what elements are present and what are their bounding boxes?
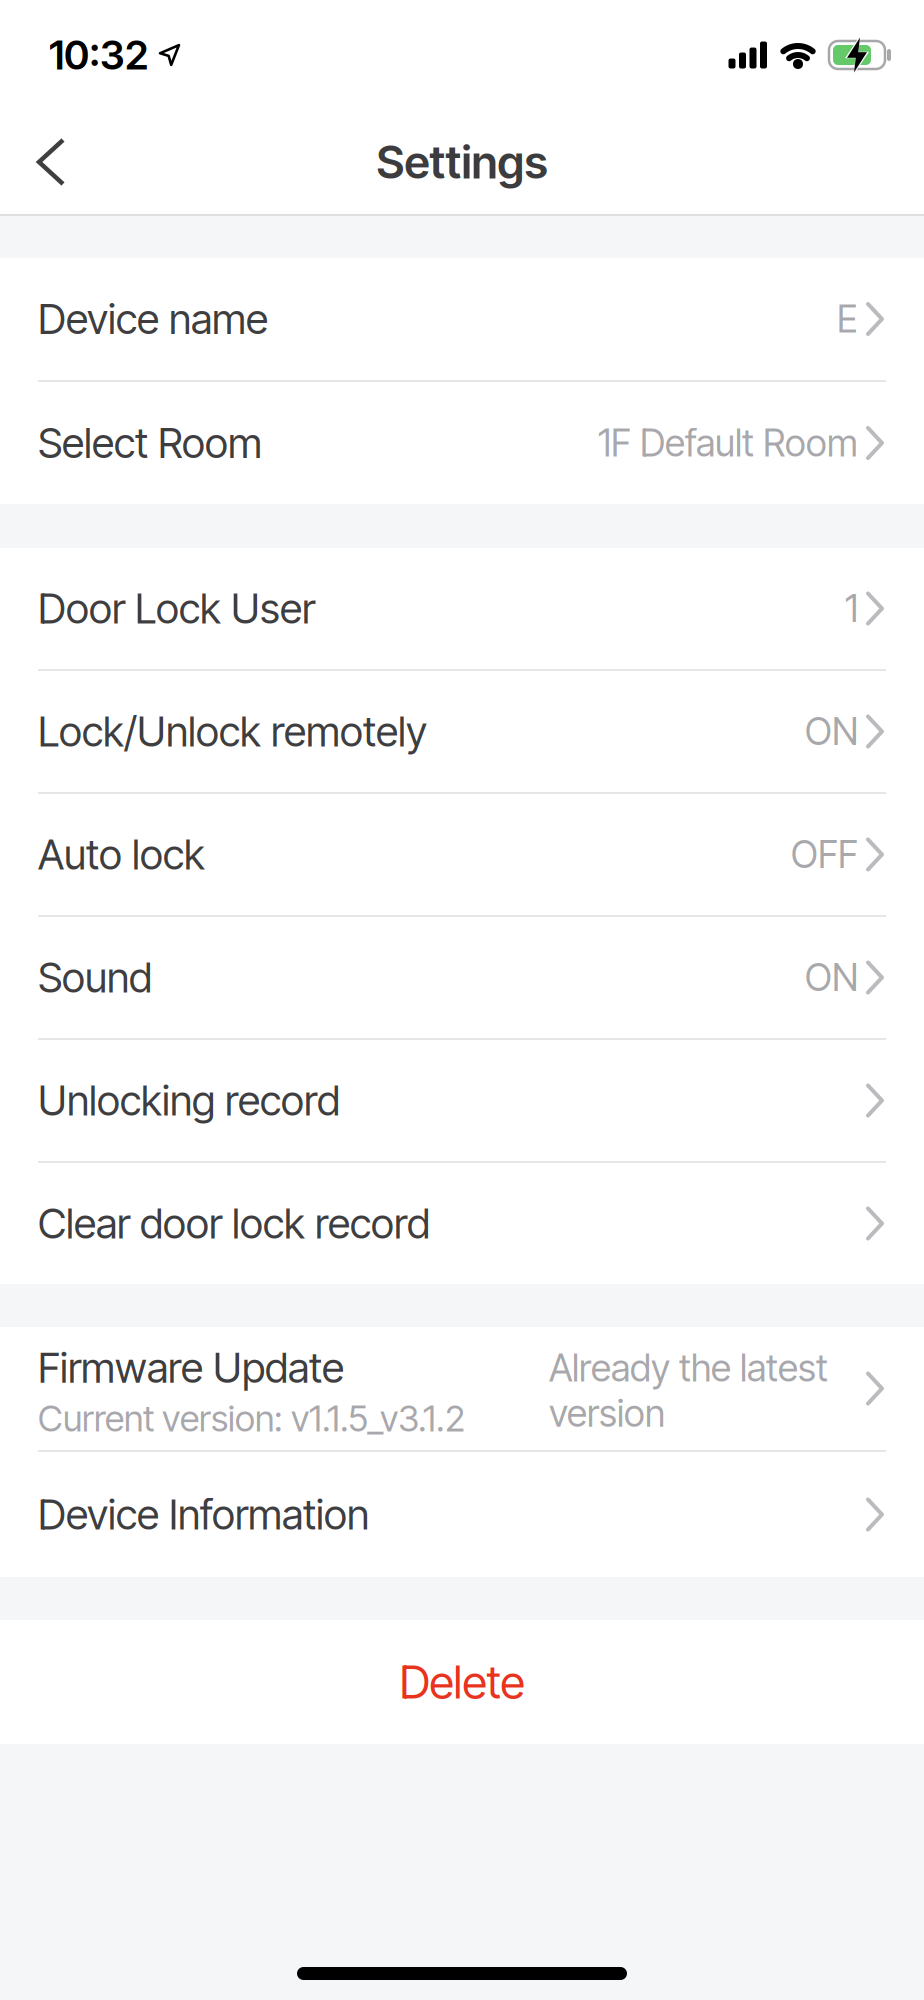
- button[interactable]: Firmware Update: [0, 1327, 924, 1450]
- staticText: Unlocking record: [38, 1075, 340, 1125]
- staticText: E: [837, 296, 858, 342]
- staticText: Current version: v1.1.5_v3.1.2: [38, 1397, 465, 1440]
- button[interactable]: Clear door lock record: [0, 1163, 924, 1284]
- staticText: ON: [805, 709, 858, 754]
- button[interactable]: Lock/Unlock remotely: [0, 671, 924, 792]
- button[interactable]: Device name: [0, 258, 924, 380]
- staticText: Settings: [376, 135, 547, 189]
- button[interactable]: Unlocking record: [0, 1040, 924, 1161]
- button[interactable]: Door Lock User: [0, 548, 924, 669]
- button[interactable]: Select Room: [0, 382, 924, 504]
- staticText: Device Information: [38, 1489, 369, 1539]
- staticText: version: [549, 1390, 665, 1436]
- staticText: ON: [805, 955, 858, 1000]
- staticText: Select Room: [38, 418, 262, 468]
- button[interactable]: Delete: [0, 1620, 924, 1744]
- staticText: Door Lock User: [38, 583, 315, 633]
- staticText: Lock/Unlock remotely: [38, 706, 427, 756]
- staticText: Auto lock: [38, 829, 205, 879]
- button[interactable]: Back: [0, 110, 93, 214]
- staticText: OFF: [791, 832, 858, 877]
- staticText: Sound: [38, 952, 152, 1002]
- button[interactable]: Device Information: [0, 1452, 924, 1577]
- staticText: Delete: [399, 1655, 524, 1709]
- button[interactable]: Auto lock: [0, 794, 924, 915]
- staticText: 10:32: [49, 31, 148, 79]
- button[interactable]: Sound: [0, 917, 924, 1038]
- staticText: 1F Default Room: [598, 420, 858, 466]
- staticText: Clear door lock record: [38, 1198, 430, 1248]
- staticText: Firmware Update: [38, 1343, 344, 1393]
- staticText: Device name: [38, 294, 268, 344]
- staticText: Already the latest: [549, 1345, 828, 1390]
- staticText: 1: [845, 586, 858, 631]
